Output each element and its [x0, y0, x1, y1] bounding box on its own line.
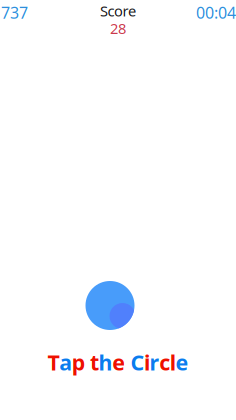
staticText: e: [175, 348, 188, 376]
staticText: a: [59, 348, 72, 376]
staticText: h: [99, 348, 113, 376]
staticText: r: [150, 348, 160, 376]
staticText: Score: [100, 1, 136, 20]
staticText: t: [90, 348, 99, 376]
staticText: T: [48, 348, 60, 376]
staticText: [84, 348, 90, 376]
button[interactable]: Tap the circle: [85, 281, 134, 330]
staticText: 737: [1, 2, 28, 23]
staticText: c: [159, 348, 170, 376]
staticText: C: [130, 348, 144, 376]
staticText: e: [112, 348, 125, 376]
staticText: p: [72, 348, 85, 376]
staticText: 28: [110, 18, 126, 38]
staticText: l: [170, 348, 176, 376]
staticText: 00:04: [196, 2, 236, 23]
staticText: i: [144, 348, 150, 376]
